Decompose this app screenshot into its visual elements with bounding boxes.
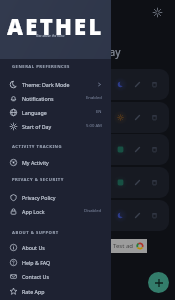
button[interactable] <box>100 200 169 231</box>
staticText: ABOUT & SUPPORT <box>12 230 59 236</box>
staticText: Rate App <box>22 288 45 295</box>
staticText: Privacy Policy <box>22 194 56 201</box>
staticText: ACTIVITY TRACKING <box>12 144 63 150</box>
button[interactable]: App Lock <box>0 204 111 218</box>
button[interactable]: Start of Day <box>0 119 111 133</box>
button[interactable]: Help & FAQ <box>0 255 111 269</box>
staticText: Help & FAQ <box>22 259 51 266</box>
staticText: PRIVACY & SECURITY <box>12 177 64 183</box>
button[interactable]: Language <box>0 105 111 119</box>
staticText: Test ad <box>113 242 133 250</box>
staticText: App Lock <box>22 208 45 215</box>
staticText: My Activity <box>22 159 49 166</box>
button[interactable] <box>100 102 169 133</box>
staticText: Disabled <box>84 208 102 214</box>
staticText: Rise above the noise <box>36 34 65 38</box>
button[interactable]: Theme: Dark Mode <box>0 77 111 91</box>
button[interactable] <box>100 167 169 198</box>
staticText: Enabled <box>86 95 102 101</box>
button[interactable]: My Activity <box>0 155 111 169</box>
staticText: 5:00 AM <box>86 123 102 129</box>
staticText: AETHEL <box>7 11 104 41</box>
button[interactable] <box>100 134 169 165</box>
staticText: Good Day <box>74 45 121 59</box>
staticText: EN <box>96 109 102 115</box>
staticText: Contact Us <box>22 273 49 280</box>
staticText: Theme: Dark Mode <box>22 81 70 88</box>
button[interactable]: About Us <box>0 240 111 254</box>
button[interactable]: Contact Us <box>0 269 111 283</box>
staticText: About Us <box>22 244 45 251</box>
button[interactable]: Test ad <box>92 239 147 253</box>
staticText: Language <box>22 109 47 116</box>
button[interactable]: Toggle theme <box>149 4 166 21</box>
button[interactable]: Rate App <box>0 284 111 298</box>
staticText: GENERAL PREFERENCES <box>12 64 70 70</box>
button[interactable]: Notifications <box>0 91 111 105</box>
staticText: Notifications <box>22 95 54 102</box>
button[interactable]: Add alarm <box>148 272 169 293</box>
staticText: Start of Day <box>22 123 52 130</box>
button[interactable]: Privacy Policy <box>0 190 111 204</box>
button[interactable] <box>100 69 169 100</box>
